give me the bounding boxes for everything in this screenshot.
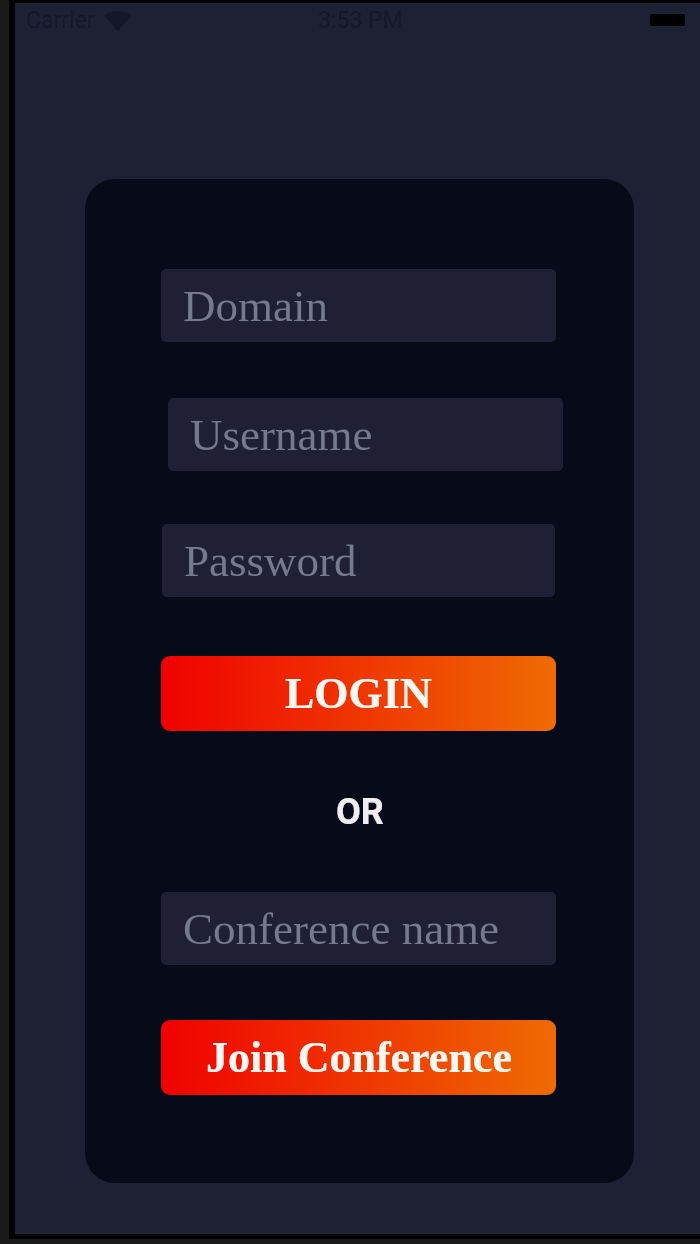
staticText: Password	[184, 536, 357, 586]
other: Battery full	[650, 14, 685, 26]
staticText: Join Conference	[206, 1033, 512, 1082]
staticText: LOGIN	[285, 669, 432, 718]
other: Wi-Fi signal	[104, 11, 132, 31]
staticText: Conference name	[183, 904, 500, 954]
button[interactable]: Join Conference	[161, 1020, 556, 1095]
staticText: Username	[190, 410, 373, 460]
button[interactable]: Domain	[161, 269, 556, 342]
staticText: OR	[336, 791, 384, 833]
staticText: Carrier	[26, 7, 95, 34]
staticText: 3:53 PM	[318, 7, 403, 34]
button[interactable]: Password	[162, 524, 555, 597]
staticText: Domain	[183, 281, 328, 331]
button[interactable]: Conference name	[161, 892, 556, 965]
button[interactable]: LOGIN	[161, 656, 556, 731]
button[interactable]: Username	[168, 398, 563, 471]
